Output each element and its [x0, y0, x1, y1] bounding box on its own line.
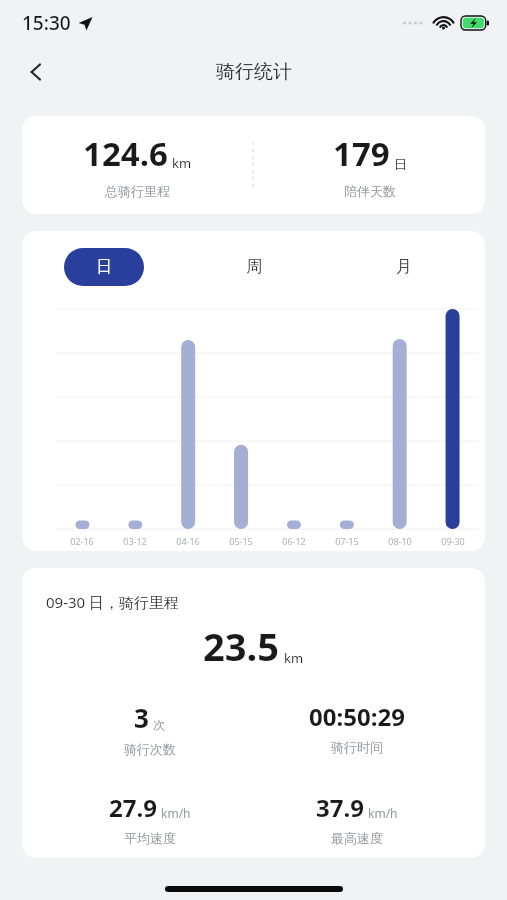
staticText: 总骑行里程	[105, 183, 170, 199]
staticText: 骑行时间	[331, 739, 383, 755]
staticText: km	[172, 154, 192, 172]
staticText: 最高速度	[331, 830, 383, 846]
staticText: 日	[96, 257, 112, 277]
staticText: 07-15	[335, 535, 359, 547]
staticText: km	[284, 649, 304, 667]
staticText: 月	[396, 257, 412, 277]
staticText: 日	[394, 156, 407, 172]
staticText: 周	[246, 257, 262, 277]
button[interactable]: 周	[214, 248, 294, 286]
staticText: 05-15	[229, 535, 253, 547]
staticText: 次	[153, 717, 165, 732]
staticText: 02-16	[70, 535, 94, 547]
staticText: 124.6	[83, 131, 168, 176]
staticText: 骑行次数	[124, 741, 176, 757]
button[interactable]: Back	[12, 48, 60, 96]
staticText: 陪伴天数	[344, 183, 396, 199]
staticText: 平均速度	[124, 830, 176, 846]
staticText: 09-30	[441, 535, 465, 547]
button[interactable]: 月	[364, 248, 444, 286]
staticText: 15:30	[22, 10, 71, 36]
staticText: 3	[134, 700, 149, 735]
staticText: 06-12	[282, 535, 306, 547]
staticText: 00:50:29	[309, 700, 405, 733]
staticText: 骑行统计	[216, 60, 292, 84]
staticText: 179	[333, 131, 390, 176]
staticText: 23.5	[203, 620, 279, 672]
staticText: 08-10	[388, 535, 412, 547]
staticText: km/h	[368, 805, 398, 821]
button[interactable]: 日	[64, 248, 144, 286]
staticText: 27.9	[109, 791, 157, 824]
staticText: 09-30 日，骑行里程	[46, 592, 180, 612]
staticText: 37.9	[316, 791, 364, 824]
staticText: km/h	[161, 805, 191, 821]
staticText: 03-12	[123, 535, 147, 547]
staticText: 04-16	[176, 535, 200, 547]
